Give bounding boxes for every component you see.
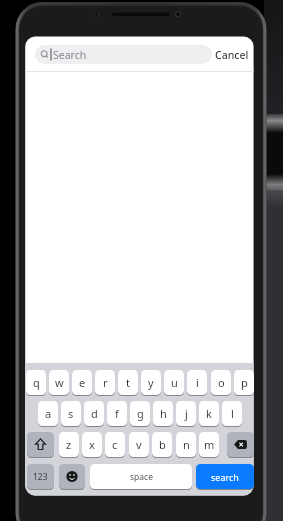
staticText: h: [160, 406, 167, 421]
staticText: x: [89, 437, 95, 452]
staticText: n: [183, 437, 190, 452]
staticText: k: [206, 406, 212, 421]
button[interactable]: b: [152, 432, 172, 457]
button[interactable]: o: [211, 370, 231, 395]
button[interactable]: n: [176, 432, 196, 457]
staticText: space: [130, 471, 153, 483]
button[interactable]: a: [38, 401, 58, 426]
button[interactable]: u: [164, 370, 184, 395]
button[interactable]: 123: [27, 464, 54, 489]
button[interactable]: j: [176, 401, 196, 426]
button[interactable]: f: [107, 401, 127, 426]
staticText: v: [136, 437, 142, 452]
staticText: p: [241, 375, 248, 390]
staticText: d: [91, 406, 98, 421]
staticText: y: [148, 375, 154, 390]
button[interactable]: [227, 432, 254, 457]
button[interactable]: r: [95, 370, 115, 395]
button[interactable]: k: [199, 401, 219, 426]
staticText: l: [231, 406, 234, 421]
staticText: b: [159, 437, 166, 452]
staticText: f: [115, 406, 119, 421]
button[interactable]: e: [72, 370, 92, 395]
button[interactable]: g: [130, 401, 150, 426]
staticText: Cancel: [215, 48, 249, 62]
staticText: e: [79, 375, 86, 390]
staticText: s: [68, 406, 74, 421]
staticText: i: [196, 375, 199, 390]
staticText: t: [126, 375, 130, 390]
staticText: o: [218, 375, 225, 390]
button[interactable]: [27, 432, 54, 457]
button[interactable]: w: [49, 370, 69, 395]
staticText: a: [45, 406, 52, 421]
staticText: search: [211, 471, 239, 483]
staticText: c: [112, 437, 118, 452]
button[interactable]: [59, 464, 85, 489]
button[interactable]: x: [82, 432, 102, 457]
button[interactable]: s: [61, 401, 81, 426]
staticText: u: [171, 375, 178, 390]
button[interactable]: i: [187, 370, 207, 395]
button[interactable]: Cancel: [214, 46, 250, 64]
button[interactable]: q: [26, 370, 46, 395]
staticText: q: [33, 375, 40, 390]
staticText: j: [185, 406, 188, 421]
button[interactable]: p: [234, 370, 254, 395]
staticText: Search: [53, 48, 87, 62]
staticText: z: [66, 437, 72, 452]
staticText: 123: [33, 471, 48, 483]
button[interactable]: y: [141, 370, 161, 395]
button[interactable]: h: [153, 401, 173, 426]
staticText: r: [103, 375, 108, 390]
button[interactable]: l: [222, 401, 242, 426]
staticText: g: [137, 406, 144, 421]
staticText: m: [204, 437, 215, 452]
button[interactable]: search: [196, 464, 254, 489]
button[interactable]: m: [199, 432, 219, 457]
button[interactable]: t: [118, 370, 138, 395]
button[interactable]: space: [90, 464, 192, 489]
button[interactable]: c: [105, 432, 125, 457]
staticText: w: [55, 375, 64, 390]
button[interactable]: v: [129, 432, 149, 457]
button[interactable]: Search: [35, 45, 212, 64]
button[interactable]: d: [84, 401, 104, 426]
button[interactable]: z: [59, 432, 79, 457]
